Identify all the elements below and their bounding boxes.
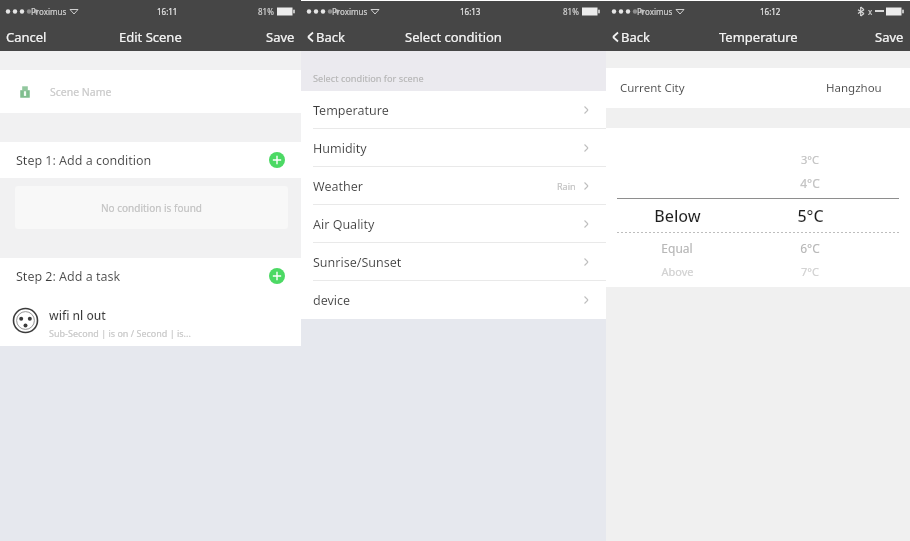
staticText: Temperature (719, 28, 798, 46)
staticText: Save (875, 28, 904, 46)
staticText: Save (266, 28, 295, 46)
staticText: 3°C (801, 152, 819, 167)
staticText: Sub-Second | is on / Second | is... (49, 327, 191, 339)
staticText: 81% (258, 6, 274, 17)
button[interactable]: Humidity (301, 129, 606, 167)
staticText: Proximus (637, 6, 673, 17)
staticText: Weather (313, 178, 363, 195)
button[interactable]: Back (301, 22, 353, 51)
staticText: 16:13 (460, 6, 481, 17)
staticText: 5°C (797, 205, 824, 227)
staticText: No condition is found (101, 201, 202, 215)
button[interactable]: Cancel (0, 22, 55, 51)
staticText: Rain (557, 180, 576, 192)
staticText: Back (316, 28, 345, 46)
button[interactable]: Step 2: Add a task (0, 258, 301, 294)
staticText: 16:12 (760, 6, 781, 17)
staticText: Scene Name (50, 85, 112, 99)
staticText: Sunrise/Sunset (313, 254, 402, 271)
staticText: Proximus (31, 6, 67, 17)
staticText: Humidity (313, 140, 367, 157)
staticText: Select condition (405, 28, 502, 46)
staticText: x (868, 6, 873, 17)
staticText: Select condition for scene (313, 72, 424, 85)
staticText: Equal (661, 240, 693, 256)
staticText: Above (661, 264, 694, 279)
button[interactable]: Step 1: Add a condition (0, 142, 301, 178)
button[interactable]: Current City (606, 68, 910, 108)
staticText: Back (621, 28, 650, 46)
button[interactable]: Save (867, 22, 910, 51)
staticText: Air Quality (313, 216, 375, 233)
staticText: Hangzhou (826, 80, 882, 96)
button[interactable]: Add (269, 268, 285, 284)
staticText: Step 1: Add a condition (16, 152, 152, 169)
staticText: Proximus (332, 6, 368, 17)
button[interactable]: Sunrise/Sunset (301, 243, 606, 281)
staticText: 81% (563, 6, 579, 17)
button[interactable]: Scene Name (0, 70, 301, 113)
button[interactable]: Weather (301, 167, 606, 205)
button[interactable]: Temperature (301, 91, 606, 129)
staticText: Step 2: Add a task (16, 268, 121, 285)
button[interactable]: wifi nl out (0, 294, 301, 346)
staticText: wifi nl out (49, 307, 106, 323)
staticText: device (313, 292, 351, 309)
staticText: 7°C (801, 264, 819, 279)
staticText: Edit Scene (119, 28, 182, 46)
staticText: 4°C (800, 175, 820, 191)
button[interactable]: Save (258, 22, 301, 51)
button[interactable]: device (301, 281, 606, 319)
staticText: 16:11 (157, 6, 178, 17)
staticText: Current City (620, 80, 685, 96)
staticText: Cancel (6, 28, 47, 46)
staticText: 6°C (800, 240, 820, 256)
button[interactable]: Air Quality (301, 205, 606, 243)
button[interactable]: Back (606, 22, 658, 51)
staticText: Temperature (313, 102, 389, 119)
staticText: Below (654, 205, 701, 227)
button[interactable]: Add (269, 152, 285, 168)
